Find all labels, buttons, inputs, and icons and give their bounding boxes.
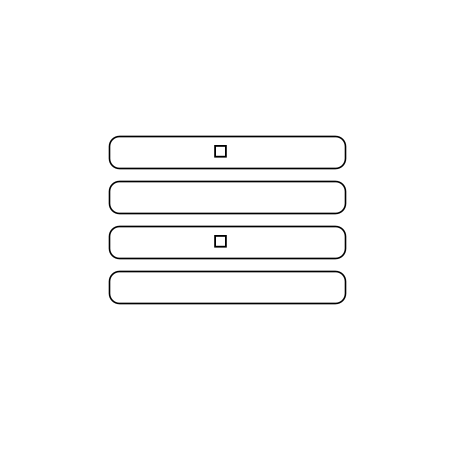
button[interactable]: Option four	[109, 271, 345, 303]
button[interactable]: Option three	[109, 226, 345, 258]
button[interactable]: Option one	[109, 136, 345, 168]
button[interactable]: Option two	[109, 181, 345, 213]
